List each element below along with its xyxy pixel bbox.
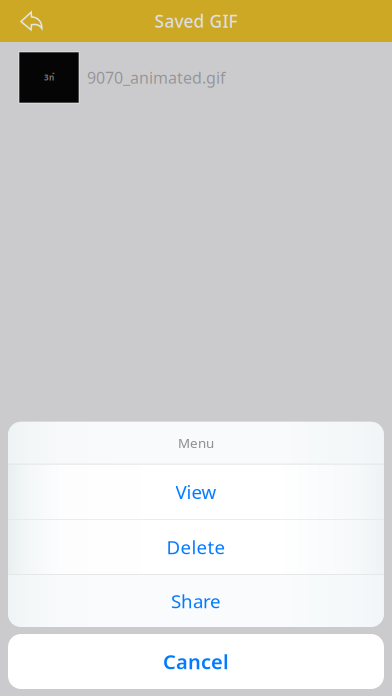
staticText: Delete	[166, 535, 225, 559]
staticText: Menu	[178, 434, 214, 452]
staticText: 3n	[44, 72, 54, 83]
button[interactable]: Cancel	[0, 634, 392, 689]
button[interactable]: Share	[8, 575, 384, 627]
staticText: View	[175, 479, 216, 504]
staticText: Share	[171, 589, 221, 613]
button[interactable]: View	[8, 465, 384, 519]
staticText: 9070_animated.gif	[87, 67, 226, 88]
button[interactable]: Back	[0, 0, 53, 42]
button[interactable]: Delete	[8, 520, 384, 574]
staticText: Saved GIF	[154, 9, 237, 32]
staticText: Cancel	[163, 648, 229, 675]
